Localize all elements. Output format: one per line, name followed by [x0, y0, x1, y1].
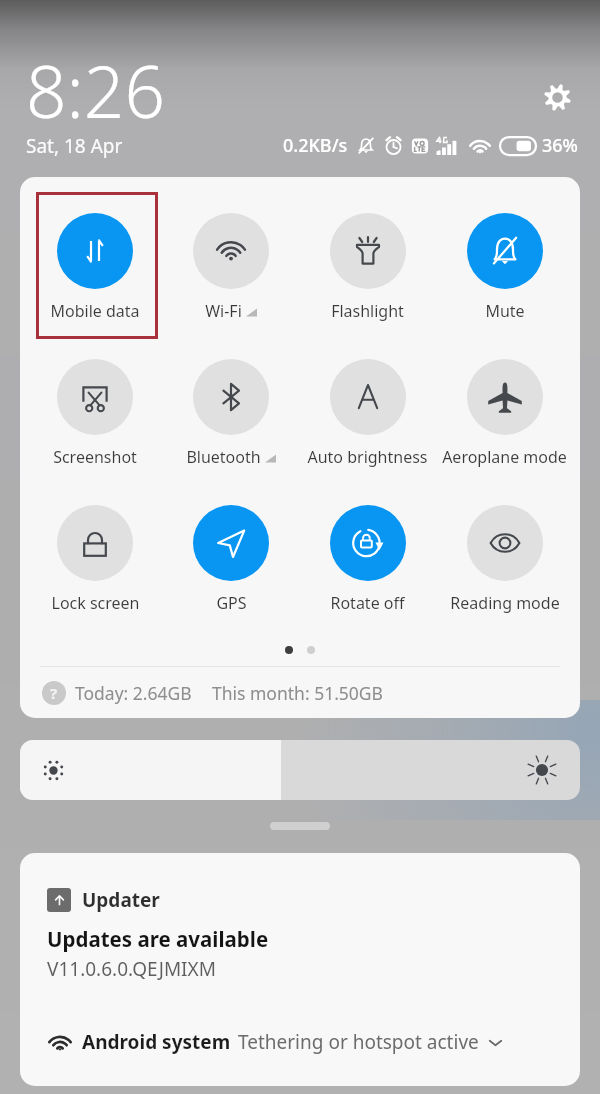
button[interactable]: GPS — [163, 505, 299, 614]
staticText: Flashlight — [331, 300, 404, 322]
staticText: Rotate off — [330, 592, 405, 614]
button[interactable]: Updater — [20, 853, 580, 998]
staticText: Mobile data — [50, 300, 140, 322]
staticText: Wi-Fi — [205, 300, 242, 322]
staticText: Android system — [82, 1029, 231, 1055]
staticText: 36% — [542, 133, 578, 158]
staticText: V11.0.6.0.QEJMIXM — [47, 956, 216, 982]
staticText: Lock screen — [51, 592, 140, 614]
staticText: Bluetooth — [186, 446, 261, 468]
button[interactable]: Android system — [20, 998, 580, 1086]
button[interactable]: Auto brightness — [299, 359, 436, 468]
button[interactable]: Rotate off — [299, 505, 436, 614]
button[interactable]: Settings — [536, 76, 578, 118]
button[interactable]: Aeroplane mode — [436, 359, 573, 468]
staticText: Aeroplane mode — [442, 446, 567, 468]
staticText: 0.2KB/s — [283, 133, 348, 158]
staticText: ? — [50, 683, 58, 703]
staticText: This month: 51.50GB — [212, 681, 383, 705]
button[interactable]: Bluetooth — [163, 359, 299, 468]
staticText: Screenshot — [53, 446, 137, 468]
button[interactable]: Mute — [436, 213, 573, 322]
staticText: Updates are available — [47, 925, 269, 953]
button[interactable]: Lock screen — [27, 505, 163, 614]
staticText: GPS — [216, 592, 247, 614]
button[interactable]: Screenshot — [27, 359, 163, 468]
staticText: Reading mode — [450, 592, 560, 614]
button[interactable]: Wi-Fi — [163, 213, 299, 322]
button[interactable]: Reading mode — [436, 505, 573, 614]
button[interactable]: Brightness — [20, 740, 580, 800]
staticText: Auto brightness — [307, 446, 428, 468]
staticText: Tethering or hotspot active — [238, 1029, 479, 1055]
button[interactable]: Mobile data — [27, 213, 163, 322]
button[interactable]: ? — [20, 667, 580, 718]
button[interactable]: Flashlight — [299, 213, 436, 322]
staticText: 8:26 — [26, 42, 165, 139]
staticText: Mute — [485, 300, 525, 322]
staticText: Updater — [82, 887, 160, 913]
staticText: Sat, 18 Apr — [26, 133, 123, 159]
staticText: Today: 2.64GB — [75, 681, 192, 705]
